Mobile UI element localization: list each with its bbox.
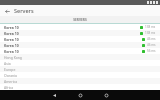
button[interactable]: Korea 10 <box>0 48 160 54</box>
staticText: Korea 10 <box>4 25 19 30</box>
staticText: 46 ms <box>147 43 156 47</box>
button[interactable]: Hong Kong <box>0 54 160 60</box>
button[interactable]: Home <box>71 90 89 100</box>
button[interactable]: Recent apps <box>97 90 115 100</box>
button[interactable]: America <box>0 78 160 84</box>
button[interactable]: Korea 10 <box>0 36 160 42</box>
staticText: Europe <box>4 67 16 72</box>
staticText: Servers <box>14 7 34 14</box>
staticText: 56 ms <box>147 49 156 53</box>
staticText: America <box>4 79 18 84</box>
staticText: 46 ms <box>147 37 156 41</box>
button[interactable]: Europe <box>0 66 160 72</box>
staticText: Korea 10 <box>4 43 19 48</box>
staticText: Hong Kong <box>4 55 22 60</box>
button[interactable]: Oceania <box>0 72 160 78</box>
staticText: Korea 10 <box>4 49 19 54</box>
button[interactable]: Asia <box>0 60 160 66</box>
staticText: Africa <box>4 85 14 90</box>
staticText: Oceania <box>4 73 17 78</box>
staticText: Korea 10 <box>4 31 19 36</box>
button[interactable]: Korea 10 <box>0 30 160 36</box>
staticText: SERVERS <box>73 18 87 22</box>
button[interactable]: Back <box>45 90 63 100</box>
staticText: 138 ms <box>145 25 156 29</box>
button[interactable]: Korea 10 <box>0 42 160 48</box>
button[interactable]: Africa <box>0 84 160 90</box>
staticText: Korea 10 <box>4 37 19 42</box>
staticText: 138 ms <box>145 31 156 35</box>
button[interactable]: Back <box>3 7 11 15</box>
button[interactable]: Korea 10 <box>0 24 160 30</box>
staticText: Asia <box>4 61 11 66</box>
